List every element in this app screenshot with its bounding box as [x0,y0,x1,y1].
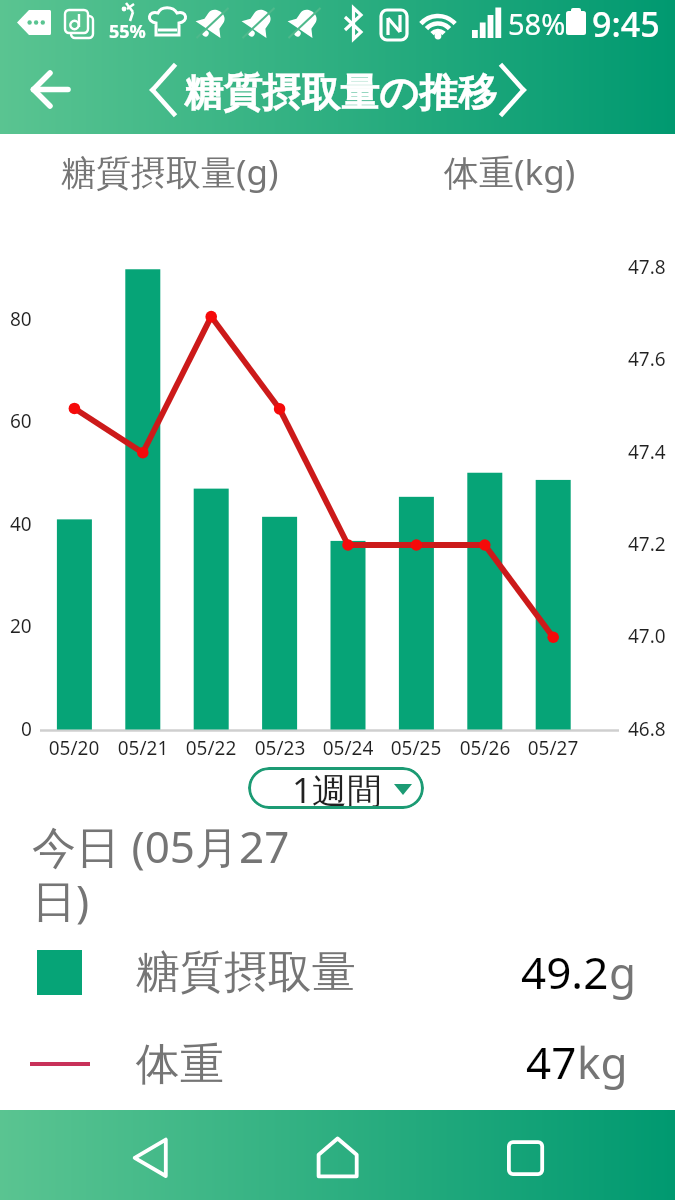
button[interactable]: 1週間 [248,767,424,809]
button[interactable]: Recents [476,1110,576,1200]
staticText: 9:45 [592,1,660,47]
staticText: 体重 [136,1037,224,1092]
staticText: 糖質摂取量(g) [61,148,279,196]
button[interactable]: Back [10,52,91,134]
button[interactable]: Home [287,1110,387,1200]
staticText: 糖質摂取量の推移 [184,68,497,117]
button[interactable]: Back [100,1110,200,1200]
staticText: g [609,942,637,1002]
staticText: 05/23 [246,735,314,761]
staticText: 58% [508,4,566,43]
staticText: 05/21 [109,735,177,761]
staticText: 47.8 [628,254,666,280]
staticText: 47.4 [628,439,666,465]
staticText: 1週間 [292,767,383,808]
staticText: 体重(kg) [444,148,576,196]
staticText: 47.0 [628,623,666,649]
button[interactable]: 糖質摂取量 [0,935,675,1007]
staticText: kg [577,1032,628,1092]
staticText: 05/22 [177,735,245,761]
staticText: 糖質摂取量 [136,945,356,1000]
staticText: 47.2 [628,531,666,557]
staticText: 47.6 [628,346,666,372]
staticText: 60 [10,408,32,434]
staticText: 40 [10,511,32,537]
staticText: 05/24 [314,735,382,761]
staticText: 47 [526,1032,577,1092]
staticText: 05/25 [382,735,450,761]
staticText: 今日 (05月27日) [32,816,297,930]
staticText: 0 [21,716,32,742]
staticText: 80 [10,306,32,332]
staticText: 49.2 [521,942,609,1002]
staticText: 55% [109,19,146,44]
staticText: 05/27 [519,735,587,761]
staticText: 20 [10,613,32,639]
button[interactable]: 体重 [0,1020,675,1092]
staticText: 05/20 [40,735,108,761]
staticText: 05/26 [451,735,519,761]
staticText: 46.8 [628,716,666,742]
